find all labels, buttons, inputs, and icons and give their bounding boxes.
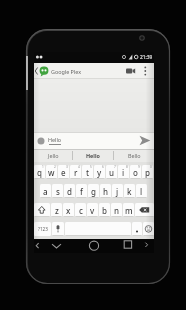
- button[interactable]: k: [124, 184, 135, 198]
- button[interactable]: b: [99, 203, 110, 217]
- button[interactable]: a: [40, 184, 51, 198]
- staticText: w: [48, 167, 55, 178]
- button[interactable]: x: [63, 203, 74, 217]
- staticText: m: [125, 205, 133, 216]
- button[interactable]: m: [123, 203, 134, 217]
- staticText: r: [74, 167, 78, 178]
- staticText: 4: [78, 165, 80, 169]
- staticText: b: [102, 205, 107, 216]
- staticText: Bello: [128, 152, 141, 159]
- staticText: 9: [138, 165, 140, 169]
- staticText: f: [80, 186, 83, 197]
- button[interactable]: ?123: [34, 222, 51, 236]
- staticText: 0: [150, 165, 152, 169]
- button[interactable]: [125, 65, 137, 77]
- staticText: p: [145, 167, 150, 178]
- button[interactable]: f: [76, 184, 87, 198]
- staticText: n: [114, 205, 120, 216]
- staticText: z: [55, 205, 59, 216]
- staticText: t: [86, 167, 90, 178]
- staticText: y: [97, 167, 102, 178]
- staticText: e: [61, 167, 66, 178]
- button[interactable]: [65, 222, 131, 236]
- staticText: o: [133, 167, 138, 178]
- button[interactable]: z: [51, 203, 62, 217]
- button[interactable]: r: [70, 165, 81, 179]
- button[interactable]: q: [34, 165, 45, 179]
- button[interactable]: n: [111, 203, 122, 217]
- staticText: 8: [126, 165, 128, 169]
- staticText: Hello: [48, 136, 62, 143]
- button[interactable]: Google Plex: [34, 65, 82, 77]
- staticText: q: [37, 167, 42, 178]
- button[interactable]: u: [106, 165, 117, 179]
- button[interactable]: [122, 239, 134, 253]
- button[interactable]: c: [75, 203, 86, 217]
- staticText: c: [79, 205, 83, 216]
- button[interactable]: [143, 222, 154, 236]
- button[interactable]: Hello: [73, 149, 113, 162]
- staticText: 3: [66, 165, 68, 169]
- staticText: d: [67, 186, 72, 197]
- staticText: 1: [42, 165, 44, 169]
- staticText: 5: [90, 165, 92, 169]
- staticText: k: [127, 186, 132, 197]
- button[interactable]: l: [136, 184, 147, 198]
- button[interactable]: [140, 63, 150, 79]
- button[interactable]: [52, 222, 64, 236]
- staticText: 6: [102, 165, 104, 169]
- staticText: ?123: [38, 226, 48, 232]
- button[interactable]: j: [112, 184, 123, 198]
- button[interactable]: [50, 239, 63, 253]
- staticText: Jello: [48, 152, 59, 159]
- button[interactable]: p: [142, 165, 153, 179]
- button[interactable]: Bello: [114, 149, 154, 162]
- staticText: 21:39: [140, 54, 153, 61]
- button[interactable]: o: [130, 165, 141, 179]
- staticText: l: [140, 186, 143, 197]
- button[interactable]: v: [87, 203, 98, 217]
- staticText: Google Plex: [51, 68, 82, 75]
- staticText: v: [90, 205, 95, 216]
- button[interactable]: [132, 222, 142, 236]
- staticText: i: [122, 167, 125, 178]
- button[interactable]: y: [94, 165, 105, 179]
- button[interactable]: [137, 132, 154, 149]
- button[interactable]: e: [58, 165, 69, 179]
- button[interactable]: Jello: [34, 149, 72, 162]
- button[interactable]: h: [100, 184, 111, 198]
- button[interactable]: [142, 239, 152, 253]
- button[interactable]: i: [118, 165, 129, 179]
- button[interactable]: [34, 203, 50, 217]
- button[interactable]: w: [46, 165, 57, 179]
- button[interactable]: t: [82, 165, 93, 179]
- staticText: x: [66, 205, 71, 216]
- button[interactable]: [135, 203, 154, 217]
- staticText: a: [43, 186, 48, 197]
- staticText: 2: [54, 165, 56, 169]
- button[interactable]: [34, 239, 44, 253]
- button[interactable]: d: [64, 184, 75, 198]
- button[interactable]: s: [52, 184, 63, 198]
- staticText: Hello: [86, 152, 100, 159]
- staticText: s: [56, 186, 60, 197]
- staticText: j: [116, 186, 119, 197]
- button[interactable]: [87, 239, 101, 253]
- staticText: u: [109, 167, 115, 178]
- button[interactable]: [37, 137, 45, 145]
- staticText: h: [103, 186, 109, 197]
- staticText: 7: [114, 165, 116, 169]
- button[interactable]: g: [88, 184, 99, 198]
- staticText: g: [91, 186, 96, 197]
